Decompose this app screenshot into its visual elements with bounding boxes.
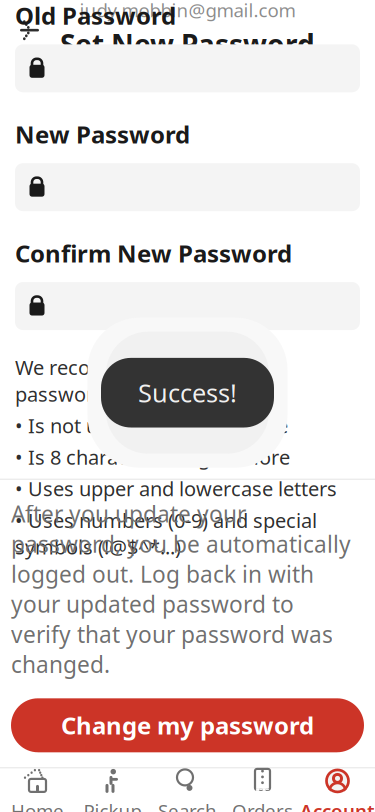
button[interactable]: Confirm New Password text field	[15, 282, 360, 330]
staticText: New Password	[15, 118, 190, 150]
staticText: judy.mobbin@gmail.com	[79, 0, 295, 22]
button[interactable]: Old Password text field	[15, 44, 360, 92]
staticText: Change my password	[61, 709, 314, 741]
staticText: After you update your password, you be a…	[11, 499, 351, 679]
staticText: Success!	[138, 376, 237, 409]
button[interactable]: New Password text field	[15, 163, 360, 211]
staticText: Set New Password	[60, 25, 315, 63]
staticText: Account	[300, 798, 375, 812]
staticText: • Is 8 characters long or more	[15, 444, 290, 470]
staticText: Search	[158, 798, 217, 812]
button[interactable]: Account	[300, 768, 375, 812]
button[interactable]: Home	[0, 768, 75, 812]
staticText: We recommend choosing a password that:	[15, 354, 269, 407]
staticText: Pickup	[83, 798, 141, 812]
button[interactable]: Back	[8, 8, 52, 52]
staticText: Confirm New Password	[15, 237, 292, 269]
button[interactable]: Orders	[225, 768, 300, 812]
staticText: • Uses numbers (0-9) and special symbols…	[15, 507, 317, 560]
button[interactable]: Pickup	[75, 768, 150, 812]
button[interactable]: Change my password	[11, 698, 364, 752]
button[interactable]: Search	[150, 768, 225, 812]
staticText: Home	[11, 798, 64, 812]
staticText: Old Password	[15, 0, 176, 31]
staticText: • Is not used somewhere else	[15, 412, 288, 439]
staticText: • Uses upper and lowercase letters	[15, 475, 337, 502]
staticText: Orders	[232, 798, 293, 812]
